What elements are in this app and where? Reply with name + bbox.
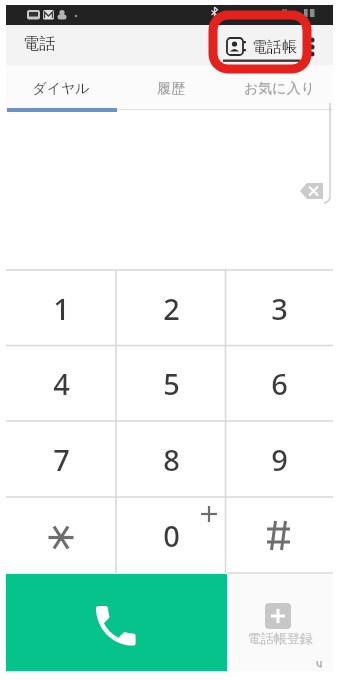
staticText: お気に入り bbox=[244, 80, 315, 98]
button[interactable]: 3 bbox=[226, 270, 333, 346]
staticText: 9 bbox=[271, 440, 288, 479]
staticText: 1 bbox=[53, 289, 70, 328]
button[interactable]: ダイヤル bbox=[6, 78, 116, 100]
button[interactable]: 履歴 bbox=[116, 78, 225, 100]
staticText: ダイヤル bbox=[32, 80, 90, 98]
staticText: 履歴 bbox=[157, 80, 185, 98]
button[interactable]: 5 bbox=[116, 346, 226, 421]
button[interactable] bbox=[227, 573, 333, 671]
staticText: 5 bbox=[163, 364, 180, 403]
button[interactable]: 6 bbox=[226, 346, 333, 421]
button[interactable]: 0 bbox=[116, 497, 226, 573]
staticText: 2 bbox=[163, 289, 180, 328]
button[interactable] bbox=[296, 179, 326, 203]
button[interactable]: 2 bbox=[116, 270, 226, 346]
staticText: 電話帳登録 bbox=[248, 630, 313, 646]
button[interactable]: お気に入り bbox=[225, 78, 333, 100]
staticText: 8 bbox=[163, 440, 180, 479]
button[interactable]: 1 bbox=[6, 270, 116, 346]
button[interactable]: 8 bbox=[116, 421, 226, 497]
button[interactable] bbox=[226, 497, 333, 573]
button[interactable]: 4 bbox=[6, 346, 116, 421]
button[interactable]: 7 bbox=[6, 421, 116, 497]
staticText: 7 bbox=[53, 440, 70, 479]
staticText: 0 bbox=[163, 516, 180, 555]
staticText: 3 bbox=[271, 289, 288, 328]
staticText: 電話帳 bbox=[252, 38, 297, 57]
button[interactable] bbox=[220, 30, 304, 64]
staticText: 4 bbox=[53, 364, 70, 403]
button[interactable]: 9 bbox=[226, 421, 333, 497]
staticText: 6 bbox=[271, 364, 288, 403]
button[interactable] bbox=[6, 497, 116, 573]
button[interactable] bbox=[6, 574, 227, 671]
staticText: 電話 bbox=[23, 34, 55, 54]
